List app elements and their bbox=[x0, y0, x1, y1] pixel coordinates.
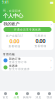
staticText: › bbox=[50, 59, 51, 62]
staticText: 可用积分 bbox=[34, 34, 46, 37]
staticText: 0.00 bbox=[35, 37, 45, 44]
staticText: 查看明细 bbox=[8, 45, 20, 48]
staticText: 购物车 bbox=[23, 96, 32, 99]
staticText: 我的 bbox=[46, 96, 52, 99]
staticText: › bbox=[50, 21, 51, 27]
button[interactable]: 我的账户 bbox=[1, 21, 53, 27]
button[interactable]: 账户余额(元) bbox=[1, 34, 27, 48]
button[interactable]: 消息 bbox=[33, 91, 44, 100]
staticText: 9:41 bbox=[2, 1, 9, 4]
staticText: 首页 bbox=[2, 96, 8, 99]
button[interactable]: 我的 bbox=[44, 91, 55, 100]
button[interactable]: 开通会员享专属优惠 bbox=[1, 27, 53, 32]
staticText: 个人中心 bbox=[3, 12, 23, 19]
staticText: 开通会员享专属优惠 bbox=[14, 28, 41, 31]
staticText: 我的账户 bbox=[3, 21, 19, 26]
button[interactable]: 购物车 bbox=[22, 91, 33, 100]
staticText: 查看全部订单 bbox=[9, 60, 27, 64]
staticText: 消息 bbox=[35, 96, 41, 99]
button[interactable]: 分类 bbox=[11, 91, 22, 100]
staticText: 我的订单 bbox=[9, 57, 21, 60]
staticText: › bbox=[50, 66, 51, 69]
staticText: Hi，欢迎回来 bbox=[3, 9, 21, 12]
button[interactable]: 优惠券 bbox=[1, 64, 53, 71]
staticText: 0.00 bbox=[9, 37, 19, 45]
staticText: 分类 bbox=[13, 96, 19, 99]
button[interactable]: 可用积分 bbox=[27, 34, 53, 48]
staticText: 暂无可用优惠券 bbox=[9, 67, 30, 71]
staticText: 常用功能 bbox=[3, 53, 15, 56]
staticText: 优惠券 bbox=[9, 64, 18, 67]
staticText: 查看明细 bbox=[34, 44, 46, 48]
staticText: ▮▮▮ bbox=[50, 1, 53, 4]
staticText: 账户余额(元) bbox=[6, 34, 23, 37]
button[interactable]: 我的订单 bbox=[1, 57, 53, 64]
button[interactable]: 首页 bbox=[0, 91, 11, 100]
